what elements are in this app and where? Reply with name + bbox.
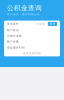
staticText: 账户余额 xyxy=(7,40,19,43)
button[interactable]: 查看更多明细 xyxy=(4,50,60,56)
staticText: 查看更多明细 xyxy=(23,52,41,55)
staticText: 查询 xyxy=(49,22,55,26)
button[interactable]: 最近缴存时间 xyxy=(4,45,60,50)
button[interactable]: 账户状态 xyxy=(4,27,60,33)
button[interactable]: 查询 xyxy=(48,22,57,26)
staticText: 账户信息 · 缴存明细记录 xyxy=(7,13,40,16)
button[interactable]: 账户余额 xyxy=(4,39,60,45)
staticText: 月缴存金额 xyxy=(7,34,22,38)
staticText: 查询条件 xyxy=(7,22,19,26)
staticText: 未设置 xyxy=(36,22,45,26)
staticText: 最近缴存时间 xyxy=(7,46,25,49)
staticText: 账户状态 xyxy=(7,28,19,32)
button[interactable]: 月缴存金额 xyxy=(4,33,60,39)
staticText: 公积金查询 xyxy=(7,4,42,12)
